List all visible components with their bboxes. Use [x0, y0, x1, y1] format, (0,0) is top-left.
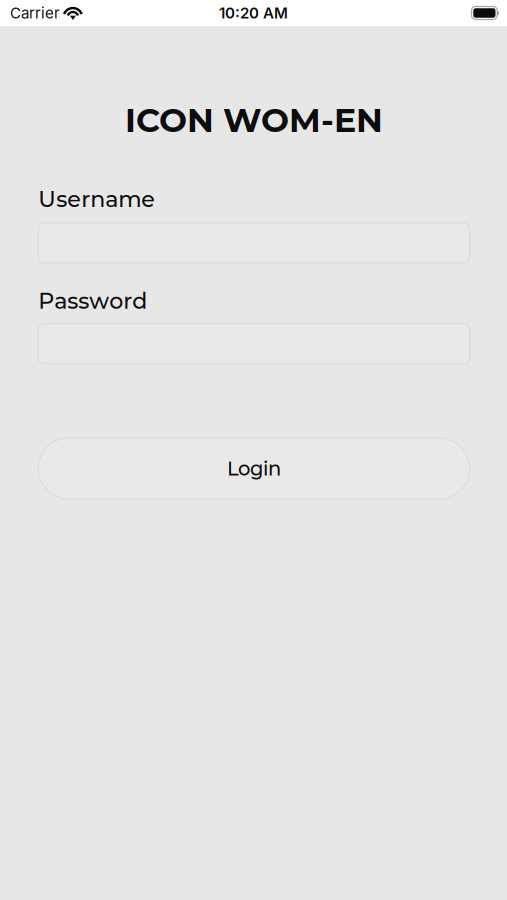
staticText: Username — [38, 186, 155, 213]
button[interactable]: Login — [38, 438, 470, 499]
staticText: 10:20 AM — [219, 4, 288, 22]
staticText: ICON WOM-EN — [125, 100, 383, 140]
staticText: Login — [227, 457, 281, 480]
staticText: Password — [38, 287, 147, 314]
staticText: Carrier — [10, 4, 60, 22]
